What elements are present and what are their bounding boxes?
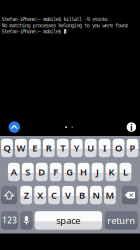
staticText: P xyxy=(129,142,135,154)
staticText: Stefan-iPhone:~ mobile$ killall -9 stock… xyxy=(2,16,108,22)
button[interactable]: V xyxy=(62,186,74,204)
button[interactable]: A xyxy=(8,163,20,181)
button[interactable]: Shift xyxy=(1,186,17,204)
button[interactable]: 123 xyxy=(1,211,18,230)
staticText: Stefan-iPhone:~ mobile$ xyxy=(2,28,64,34)
staticText: No matching processes belonging to you w… xyxy=(2,22,128,28)
button[interactable]: Delete xyxy=(122,186,138,204)
staticText: R xyxy=(46,142,52,154)
staticText: M xyxy=(105,189,114,201)
button[interactable]: E xyxy=(29,139,41,157)
button[interactable]: I xyxy=(99,139,110,157)
button[interactable]: S xyxy=(22,163,34,181)
staticText: N xyxy=(92,189,99,201)
button[interactable]: W xyxy=(15,139,27,157)
button[interactable]: Y xyxy=(71,139,83,157)
staticText: return xyxy=(107,214,135,227)
staticText: X xyxy=(37,189,43,201)
button[interactable]: N xyxy=(90,186,102,204)
button[interactable]: O xyxy=(113,139,124,157)
button[interactable]: return xyxy=(105,211,138,230)
button[interactable]: T xyxy=(57,139,69,157)
button[interactable]: R xyxy=(43,139,55,157)
button[interactable]: G xyxy=(64,163,76,181)
staticText: space xyxy=(56,214,80,227)
staticText: L xyxy=(123,166,128,178)
staticText: I xyxy=(103,142,106,154)
staticText: D xyxy=(38,166,45,178)
button[interactable]: J xyxy=(92,163,103,181)
button[interactable]: H xyxy=(78,163,89,181)
staticText: V xyxy=(65,189,71,201)
button[interactable]: C xyxy=(48,186,60,204)
staticText: H xyxy=(80,166,87,178)
button[interactable]: L xyxy=(120,163,131,181)
staticText: A xyxy=(11,166,17,178)
staticText: O xyxy=(115,142,122,154)
button[interactable]: space xyxy=(35,211,102,230)
staticText: U xyxy=(87,142,94,154)
staticText: i xyxy=(130,121,133,133)
button[interactable]: Q xyxy=(1,139,13,157)
staticText: T xyxy=(60,142,65,154)
staticText: W xyxy=(16,142,25,154)
button[interactable]: U xyxy=(85,139,97,157)
staticText: F xyxy=(53,166,58,178)
staticText: J xyxy=(96,166,99,178)
button[interactable]: K xyxy=(106,163,117,181)
button[interactable]: P xyxy=(127,139,138,157)
button[interactable]: B xyxy=(76,186,88,204)
button[interactable]: Scroll to top xyxy=(5,119,24,136)
staticText: Y xyxy=(74,142,80,154)
button[interactable]: Dictate xyxy=(20,211,33,230)
staticText: G xyxy=(66,166,73,178)
button[interactable]: F xyxy=(50,163,62,181)
staticText: E xyxy=(32,142,37,154)
staticText: Z xyxy=(24,189,29,201)
button[interactable]: M xyxy=(104,186,116,204)
staticText: S xyxy=(25,166,30,178)
staticText: C xyxy=(51,189,57,201)
button[interactable]: Z xyxy=(20,186,32,204)
staticText: 123 xyxy=(2,215,17,226)
staticText: B xyxy=(79,189,85,201)
button[interactable]: X xyxy=(34,186,46,204)
button[interactable]: Info xyxy=(123,119,140,136)
staticText: Q xyxy=(3,142,10,154)
staticText: K xyxy=(108,166,114,178)
button[interactable]: D xyxy=(36,163,48,181)
